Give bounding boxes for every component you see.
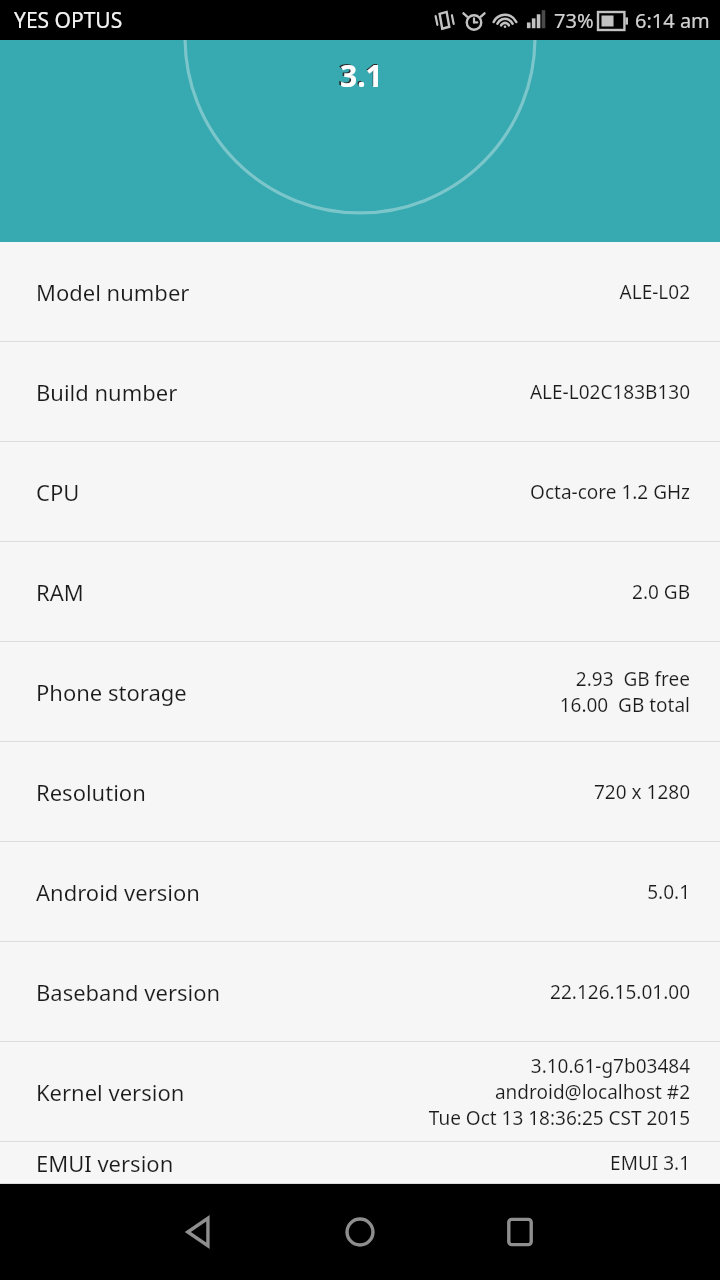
staticText: 3.1 [340, 55, 383, 96]
button[interactable]: Home [280, 1184, 440, 1280]
staticText: 3.10.61-g7b03484 [530, 1053, 690, 1079]
button[interactable]: Back [120, 1184, 280, 1280]
staticText: 720 x 1280 [593, 779, 690, 805]
button[interactable]: Build number [0, 342, 720, 442]
staticText: EMUI version [36, 1148, 174, 1178]
button[interactable]: CPU [0, 442, 720, 542]
staticText: 5.0.1 [647, 879, 690, 905]
staticText: ALE-L02C183B130 [529, 379, 690, 405]
staticText: Tue Oct 13 18:36:25 CST 2015 [428, 1105, 690, 1131]
button[interactable]: Baseband version [0, 942, 720, 1042]
staticText: 22.126.15.01.00 [550, 979, 690, 1005]
button[interactable]: Model number [0, 242, 720, 342]
staticText: Octa-core 1.2 GHz [530, 479, 690, 505]
staticText: 2.0 GB [632, 579, 690, 605]
staticText: android@localhost #2 [494, 1079, 690, 1105]
button[interactable]: EMUI version [0, 1142, 720, 1184]
staticText: ALE-L02 [619, 279, 690, 305]
staticText: 2.93 GB free [575, 666, 690, 692]
button[interactable]: Resolution [0, 742, 720, 842]
button[interactable]: Android version [0, 842, 720, 942]
staticText: Android version [36, 877, 200, 907]
button[interactable]: RAM [0, 542, 720, 642]
staticText: 73% [554, 7, 594, 34]
staticText: RAM [36, 577, 84, 607]
staticText: Kernel version [36, 1077, 185, 1107]
button[interactable]: Kernel version [0, 1042, 720, 1142]
button[interactable]: Phone storage [0, 642, 720, 742]
staticText: Build number [36, 377, 178, 407]
staticText: Baseband version [36, 977, 221, 1007]
staticText: Model number [36, 277, 190, 307]
staticText: EMUI 3.1 [610, 1150, 690, 1176]
staticText: Resolution [36, 777, 146, 807]
staticText: CPU [36, 477, 80, 507]
button[interactable]: Recents [440, 1184, 600, 1280]
staticText: Phone storage [36, 677, 187, 707]
staticText: 3.1 [338, 53, 383, 95]
staticText: 6:14 am [635, 7, 710, 34]
staticText: 16.00 GB total [559, 692, 690, 718]
staticText: YES OPTUS [14, 6, 123, 35]
